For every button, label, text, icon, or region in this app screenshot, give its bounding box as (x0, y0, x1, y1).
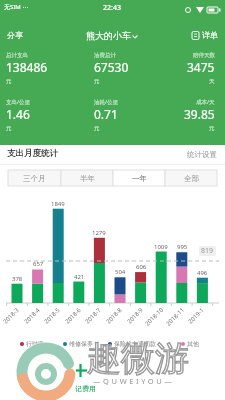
staticText: 2018-4 (22, 306, 42, 325)
staticText: 2018-11 (164, 306, 186, 328)
staticText: 记费用 (75, 384, 96, 393)
staticText: 保险检交通罚款 (114, 340, 156, 348)
staticText: 油耗/公里 (94, 98, 119, 106)
staticText: 1.46 (6, 106, 30, 122)
staticText: 元 (94, 78, 100, 85)
staticText: 熊大的小车 (86, 30, 131, 41)
staticText: 67530 (94, 59, 129, 75)
staticText: 详单 (202, 30, 218, 40)
staticText: 138486 (6, 59, 48, 75)
staticText: 半年 (80, 174, 95, 183)
staticText: 三个月 (23, 174, 46, 183)
staticText: 819 (201, 246, 214, 256)
button[interactable]: 详单 (191, 30, 218, 40)
staticText: 2018-3 (1, 306, 21, 325)
staticText: 657 (33, 260, 44, 268)
staticText: 元 (209, 125, 215, 132)
staticText: 一年 (132, 174, 147, 183)
button[interactable]: 三个月 (8, 170, 61, 186)
staticText: 496 (197, 269, 208, 277)
staticText: 其他 (187, 340, 199, 348)
staticText: 1849 (51, 200, 65, 208)
staticText: 行驶费 (26, 340, 44, 348)
staticText: 无SIM ⋯ (4, 3, 29, 11)
staticText: 378 (12, 275, 23, 283)
staticText: 支出/公里 (6, 98, 31, 106)
staticText: 元 (6, 78, 12, 85)
staticText: 总计支出 (6, 52, 28, 59)
staticText: 陪伴天数 (193, 52, 215, 59)
staticText: 元 (6, 125, 12, 132)
staticText: 2018-9 (125, 306, 145, 325)
button[interactable]: 熊大的小车 (86, 30, 139, 41)
staticText: 421 (74, 273, 85, 281)
staticText: 2018-6 (63, 306, 83, 325)
staticText: 995 (177, 243, 188, 251)
staticText: 0.71 (94, 106, 118, 122)
staticText: 全部 (184, 174, 199, 183)
staticText: 22:43 (103, 3, 121, 13)
staticText: 支出月度统计 (7, 148, 58, 159)
button[interactable]: 记费用 (64, 356, 108, 398)
staticText: 504 (115, 268, 126, 276)
button[interactable]: 统计设置 (187, 150, 217, 159)
staticText: 2019-1 (186, 306, 206, 325)
button[interactable]: 半年 (61, 170, 113, 186)
staticText: 2018-10 (143, 306, 165, 328)
staticText: 2018-8 (104, 306, 124, 325)
staticText: 油费总计 (94, 52, 116, 59)
staticText: 趣微游 (87, 337, 189, 380)
staticText: 1009 (154, 243, 168, 251)
staticText: 39.85 (184, 106, 215, 122)
staticText: —QUWEIYOU— (93, 376, 175, 386)
staticText: 606 (136, 263, 147, 271)
button[interactable]: 分享 (7, 30, 23, 40)
staticText: 2018-7 (83, 306, 103, 325)
staticText: 天 (209, 78, 215, 85)
staticText: 维修保养 (69, 340, 93, 348)
button[interactable]: 一年 (113, 170, 165, 186)
staticText: 1279 (92, 229, 106, 237)
staticText: 2018-5 (42, 306, 62, 325)
staticText: 元 (94, 125, 100, 132)
staticText: 3475 (187, 59, 215, 75)
staticText: 成本/天 (196, 98, 215, 106)
button[interactable]: 全部 (165, 170, 217, 186)
